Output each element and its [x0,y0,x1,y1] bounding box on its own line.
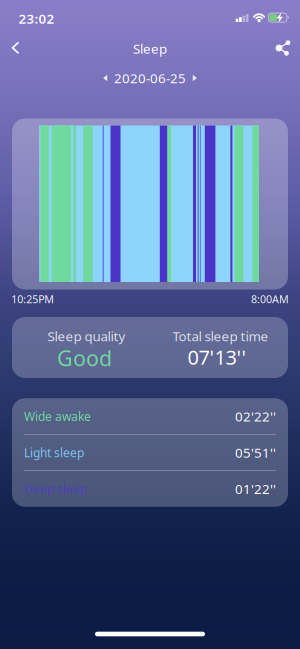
staticText: 07'13'' [187,344,246,370]
staticText: Sleep quality [47,327,125,345]
staticText: Deep sleep [24,481,87,497]
staticText: 10:25PM [11,292,54,306]
button[interactable] [182,65,208,91]
staticText: Sleep [133,40,167,57]
staticText: 8:00AM [251,292,289,306]
staticText: 2020-06-25 [114,69,186,87]
staticText: Total sleep time [172,327,268,345]
staticText: Wide awake [24,408,91,424]
staticText: Good [57,344,112,372]
staticText: 23:02 [18,10,54,27]
staticText: 01'22'' [235,480,276,498]
staticText: 05'51'' [235,444,276,461]
button[interactable] [0,33,30,63]
button[interactable] [92,65,118,91]
button[interactable] [266,33,296,63]
staticText: Light sleep [24,445,84,460]
staticText: 02'22'' [235,407,276,425]
